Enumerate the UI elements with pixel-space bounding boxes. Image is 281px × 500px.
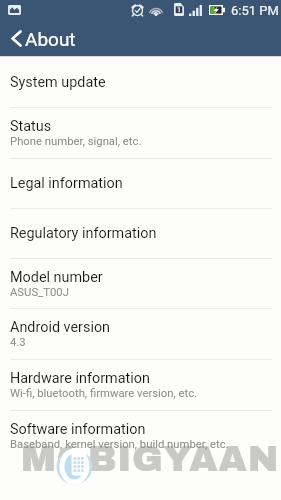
staticText: Baseband, kernel version, build number, … bbox=[10, 438, 229, 451]
staticText: System update bbox=[10, 74, 106, 91]
button[interactable]: Back bbox=[4, 20, 28, 56]
staticText: Legal information bbox=[10, 175, 123, 192]
staticText: Android version bbox=[10, 319, 111, 336]
staticText: ASUS_T00J bbox=[10, 286, 69, 299]
button[interactable]: Status bbox=[0, 108, 281, 158]
staticText: About bbox=[25, 28, 76, 50]
staticText: 6:51 PM bbox=[231, 3, 279, 18]
staticText: Software information bbox=[10, 421, 146, 438]
button[interactable]: Legal information bbox=[0, 159, 281, 208]
button[interactable]: Hardware information bbox=[0, 360, 281, 410]
staticText: 4.3 bbox=[10, 336, 26, 349]
staticText: Status bbox=[10, 118, 52, 135]
staticText: Phone number, signal, etc. bbox=[10, 135, 142, 148]
staticText: Regulatory information bbox=[10, 225, 157, 242]
staticText: Wi-fi, bluetooth, firmware version, etc. bbox=[10, 387, 198, 400]
staticText: Hardware information bbox=[10, 370, 150, 387]
button[interactable]: Model number bbox=[0, 259, 281, 308]
button[interactable]: Regulatory information bbox=[0, 209, 281, 258]
button[interactable]: Software information bbox=[0, 411, 281, 461]
button[interactable]: Android version bbox=[0, 309, 281, 359]
staticText: Model number bbox=[10, 269, 103, 286]
staticText: MOBIGYAAN bbox=[21, 439, 279, 479]
button[interactable]: System update bbox=[0, 57, 281, 107]
